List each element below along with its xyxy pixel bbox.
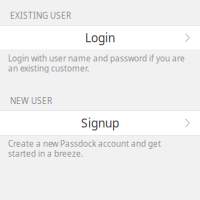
staticText: EXISTING USER (10, 10, 71, 21)
staticText: Create a new Passdock account and get (8, 138, 161, 149)
staticText: started in a breeze. (8, 148, 83, 159)
staticText: Login with user name and password if you… (8, 53, 185, 64)
button[interactable]: Signup (0, 110, 200, 135)
staticText: Signup (81, 115, 119, 131)
staticText: NEW USER (10, 95, 52, 107)
staticText: an existing customer. (8, 63, 89, 74)
staticText: Login (85, 30, 115, 46)
button[interactable]: Login (0, 25, 200, 50)
